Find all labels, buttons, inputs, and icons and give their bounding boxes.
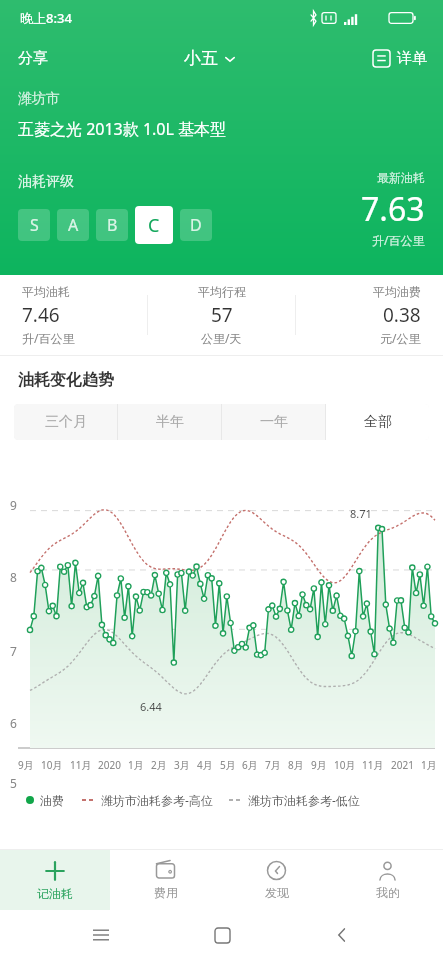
- other: 记油耗: [44, 860, 66, 882]
- button[interactable]: 全部: [326, 404, 429, 440]
- staticText: 潍坊市油耗参考-低位: [248, 792, 360, 808]
- staticText: 8.71: [350, 506, 372, 521]
- button[interactable]: 费用: [110, 850, 221, 910]
- staticText: 三个月: [45, 413, 87, 431]
- staticText: 7.46: [22, 302, 60, 328]
- staticText: 2月: [151, 758, 167, 772]
- staticText: 平均油耗: [22, 284, 70, 299]
- staticText: 6: [10, 715, 17, 731]
- staticText: C: [148, 213, 160, 238]
- staticText: 最新油耗: [377, 170, 425, 185]
- staticText: 油耗变化趋势: [18, 370, 114, 390]
- staticText: 9月: [311, 758, 327, 772]
- other: 费用: [155, 860, 176, 881]
- staticText: 分享: [18, 49, 48, 68]
- staticText: 7: [10, 643, 17, 659]
- staticText: A: [68, 214, 79, 236]
- staticText: 2021: [391, 758, 414, 772]
- staticText: 全部: [364, 413, 392, 431]
- staticText: 记油耗: [37, 886, 73, 901]
- button[interactable]: 三个月: [14, 404, 117, 440]
- staticText: 11月: [70, 758, 92, 772]
- staticText: D: [190, 214, 202, 236]
- staticText: 0.38: [383, 302, 421, 328]
- staticText: 6.44: [140, 699, 162, 714]
- other: 发现: [266, 860, 287, 881]
- staticText: 9月: [18, 758, 34, 772]
- staticText: 升/百公里: [22, 330, 75, 346]
- staticText: 平均行程: [198, 284, 246, 299]
- staticText: 57: [211, 302, 233, 328]
- staticText: 8: [10, 569, 17, 585]
- staticText: 公里/天: [201, 330, 242, 346]
- staticText: 5月: [220, 758, 236, 772]
- staticText: 10月: [41, 758, 63, 772]
- button[interactable]: B: [96, 209, 128, 241]
- staticText: 9: [10, 497, 17, 513]
- staticText: 5: [10, 775, 17, 791]
- staticText: 4月: [197, 758, 213, 772]
- button[interactable]: Home: [202, 915, 242, 955]
- button[interactable]: 发现: [221, 850, 332, 910]
- staticText: 小五: [184, 48, 218, 69]
- button[interactable]: 记油耗: [0, 850, 110, 910]
- other: 详单: [373, 50, 390, 67]
- staticText: 7月: [265, 758, 281, 772]
- staticText: 一年: [260, 413, 288, 431]
- button[interactable]: 分享: [0, 41, 60, 76]
- staticText: 费用: [154, 885, 178, 900]
- button[interactable]: 详单: [361, 43, 443, 74]
- staticText: 11月: [362, 758, 384, 772]
- staticText: 我的: [376, 885, 400, 900]
- staticText: 油耗评级: [18, 173, 74, 191]
- staticText: 1月: [421, 758, 437, 772]
- button[interactable]: 我的: [332, 850, 443, 910]
- staticText: 10月: [334, 758, 356, 772]
- button[interactable]: C: [135, 206, 173, 244]
- staticText: 1月: [128, 758, 144, 772]
- button[interactable]: 半年: [118, 404, 221, 440]
- button[interactable]: Recents: [81, 915, 121, 955]
- staticText: 油费: [40, 793, 64, 808]
- button[interactable]: 一年: [222, 404, 325, 440]
- other: 我的: [377, 860, 398, 881]
- button[interactable]: 小五: [174, 42, 246, 75]
- staticText: 半年: [156, 413, 184, 431]
- staticText: 五菱之光 2013款 1.0L 基本型: [18, 118, 227, 140]
- staticText: 6月: [242, 758, 258, 772]
- staticText: 平均油费: [373, 284, 421, 299]
- staticText: 2020: [98, 758, 121, 772]
- staticText: 发现: [265, 885, 289, 900]
- staticText: 7.63: [361, 187, 425, 231]
- staticText: S: [30, 214, 39, 236]
- staticText: 升/百公里: [372, 232, 425, 248]
- button[interactable]: S: [18, 209, 50, 241]
- staticText: B: [107, 214, 118, 236]
- staticText: 潍坊市油耗参考-高位: [101, 792, 213, 808]
- staticText: 晚上8:34: [20, 9, 72, 27]
- staticText: 元/公里: [380, 330, 421, 346]
- button[interactable]: A: [57, 209, 89, 241]
- staticText: 潍坊市: [18, 90, 60, 108]
- staticText: 8月: [288, 758, 304, 772]
- button[interactable]: D: [180, 209, 212, 241]
- staticText: 3月: [174, 758, 190, 772]
- staticText: 详单: [397, 49, 427, 68]
- button[interactable]: Back: [322, 915, 362, 955]
